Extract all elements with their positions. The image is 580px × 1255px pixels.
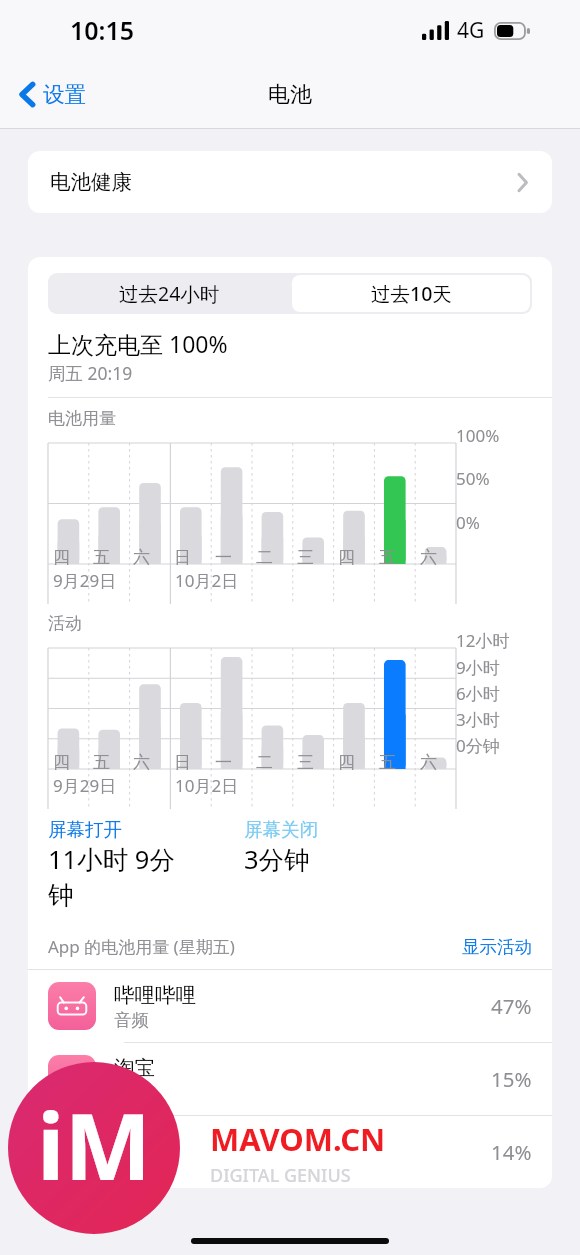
staticText: 音频 <box>114 1009 149 1031</box>
staticText: 100% <box>456 424 500 447</box>
staticText: 15% <box>491 1065 532 1093</box>
staticText: 9月29日 <box>53 774 117 797</box>
staticText: 50% <box>456 467 490 490</box>
staticText: 10月2日 <box>175 774 239 797</box>
staticText: 设置 <box>43 81 86 108</box>
button[interactable]: 淘宝 <box>28 1043 552 1115</box>
staticText: 上次充电至 100% <box>48 328 228 359</box>
other: Open battery health <box>517 173 528 192</box>
staticText: 二 <box>256 752 273 773</box>
staticText: DIGITAL GENIUS <box>210 1163 351 1188</box>
staticText: 12小时 <box>456 629 510 652</box>
staticText: 一 <box>215 752 232 773</box>
staticText: 淘宝 <box>114 1055 155 1081</box>
staticText: 周五 20:19 <box>48 361 133 385</box>
staticText: 10:15 <box>70 13 135 47</box>
staticText: 三 <box>297 547 314 568</box>
staticText: 3分钟 <box>244 842 310 877</box>
button[interactable]: 设置 <box>14 73 92 116</box>
staticText: 11小时 9分钟 <box>48 842 188 911</box>
button[interactable]: 显示活动 <box>462 936 532 958</box>
staticText: 电池用量 <box>48 408 116 429</box>
staticText: 五 <box>379 752 396 773</box>
staticText: 六 <box>420 752 437 773</box>
staticText: 六 <box>420 547 437 568</box>
staticText: 屏幕关闭 <box>244 818 318 841</box>
staticText: 活动 <box>48 613 82 634</box>
staticText: 9小时 <box>456 656 500 679</box>
staticText: iM <box>37 1082 152 1207</box>
staticText: 6小时 <box>456 682 500 705</box>
staticText: 0% <box>456 511 480 534</box>
staticText: 显示活动 <box>462 936 532 958</box>
staticText: 9月29日 <box>53 569 117 592</box>
staticText: 音频 <box>114 1155 149 1177</box>
button[interactable]: 过去24小时 <box>48 273 290 314</box>
button[interactable]: 过去10天 <box>292 275 530 312</box>
staticText: App 的电池用量 (星期五) <box>48 935 235 958</box>
staticText: 四 <box>338 547 355 568</box>
staticText: 微信 <box>114 1128 155 1154</box>
button[interactable]: 微信 <box>28 1116 552 1188</box>
staticText: 哔哩哔哩 <box>114 982 196 1008</box>
staticText: 二 <box>256 547 273 568</box>
staticText: 3小时 <box>456 708 500 731</box>
staticText: 10月2日 <box>175 569 239 592</box>
staticText: 五 <box>93 547 110 568</box>
staticText: 电池 <box>268 81 312 109</box>
staticText: 过去24小时 <box>119 280 220 307</box>
staticText: 一 <box>215 547 232 568</box>
staticText: 4G <box>457 16 485 45</box>
staticText: 14% <box>491 1138 532 1166</box>
staticText: 三 <box>297 752 314 773</box>
staticText: 日 <box>174 547 191 568</box>
staticText: 五 <box>379 547 396 568</box>
staticText: 0分钟 <box>456 734 500 757</box>
staticText: 47% <box>491 992 532 1020</box>
staticText: MAVOM.CN <box>210 1118 386 1160</box>
staticText: 四 <box>53 547 70 568</box>
staticText: 四 <box>53 752 70 773</box>
button[interactable]: 哔哩哔哩 <box>28 970 552 1042</box>
staticText: 六 <box>133 547 150 568</box>
button[interactable]: 电池健康 <box>28 151 552 213</box>
staticText: 五 <box>93 752 110 773</box>
staticText: 日 <box>174 752 191 773</box>
staticText: 过去10天 <box>371 280 452 307</box>
staticText: 四 <box>338 752 355 773</box>
staticText: 屏幕打开 <box>48 818 122 841</box>
staticText: 电池健康 <box>50 169 132 195</box>
staticText: 六 <box>133 752 150 773</box>
